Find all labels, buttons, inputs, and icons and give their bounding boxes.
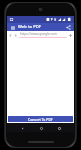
button[interactable]: Back xyxy=(18,124,26,132)
button[interactable]: Home xyxy=(37,124,45,132)
button[interactable]: https://www.google.com xyxy=(19,32,67,38)
button[interactable]: New tab xyxy=(68,33,73,38)
button[interactable]: Forward xyxy=(13,33,18,38)
button[interactable]: Open navigation menu xyxy=(9,24,16,31)
button[interactable]: Back xyxy=(8,33,13,38)
staticText: https://www.google.com xyxy=(20,32,57,36)
button[interactable]: Recent apps xyxy=(55,124,63,132)
button[interactable]: Convert To PDF xyxy=(8,116,73,122)
staticText: Web to PDF xyxy=(18,24,42,30)
staticText: Convert To PDF xyxy=(28,117,53,122)
button[interactable]: Share xyxy=(65,24,72,31)
